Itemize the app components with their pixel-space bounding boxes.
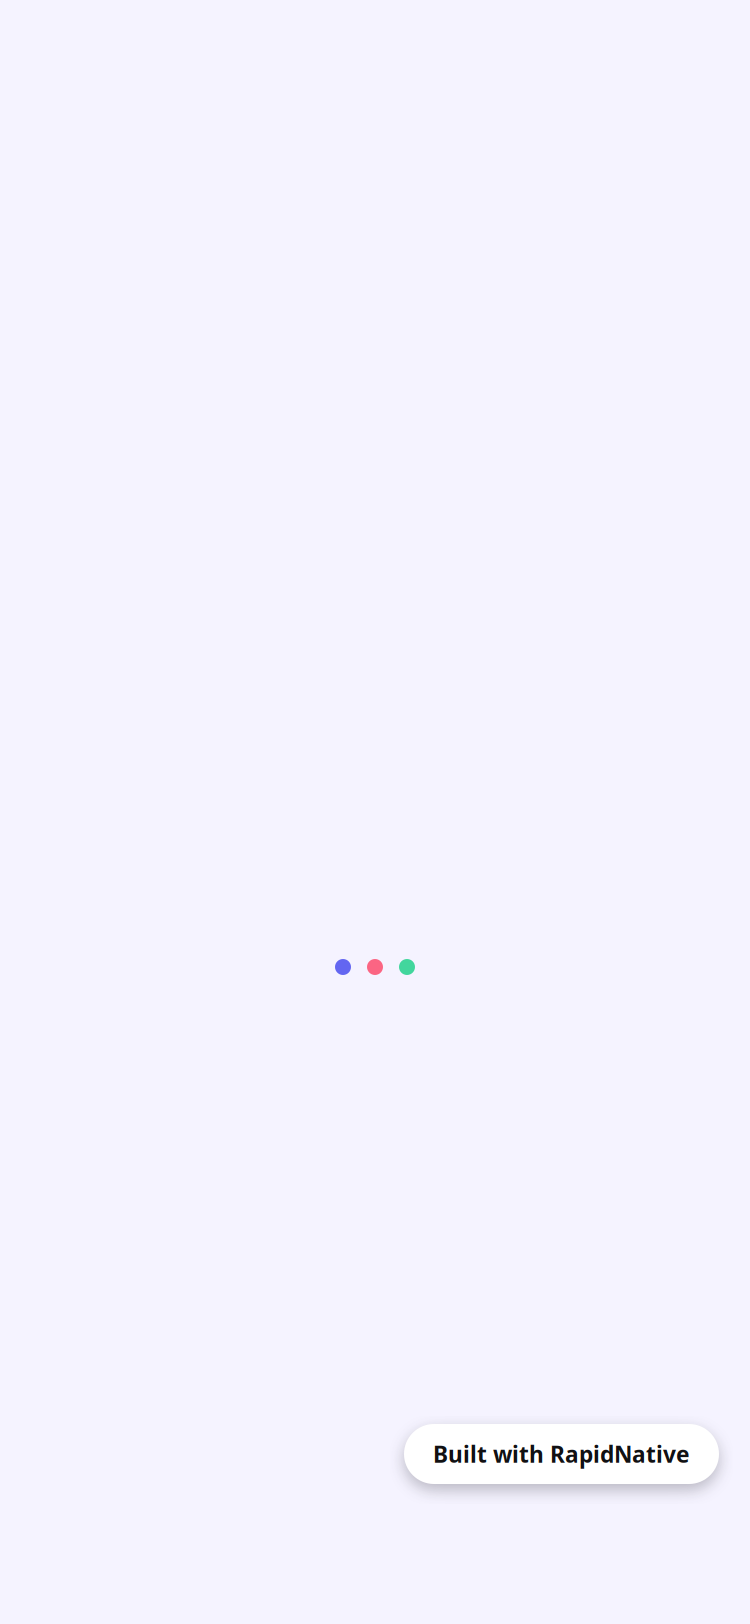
- button[interactable]: Built with RapidNative: [404, 1424, 719, 1484]
- staticText: Built with RapidNative: [433, 1439, 690, 1469]
